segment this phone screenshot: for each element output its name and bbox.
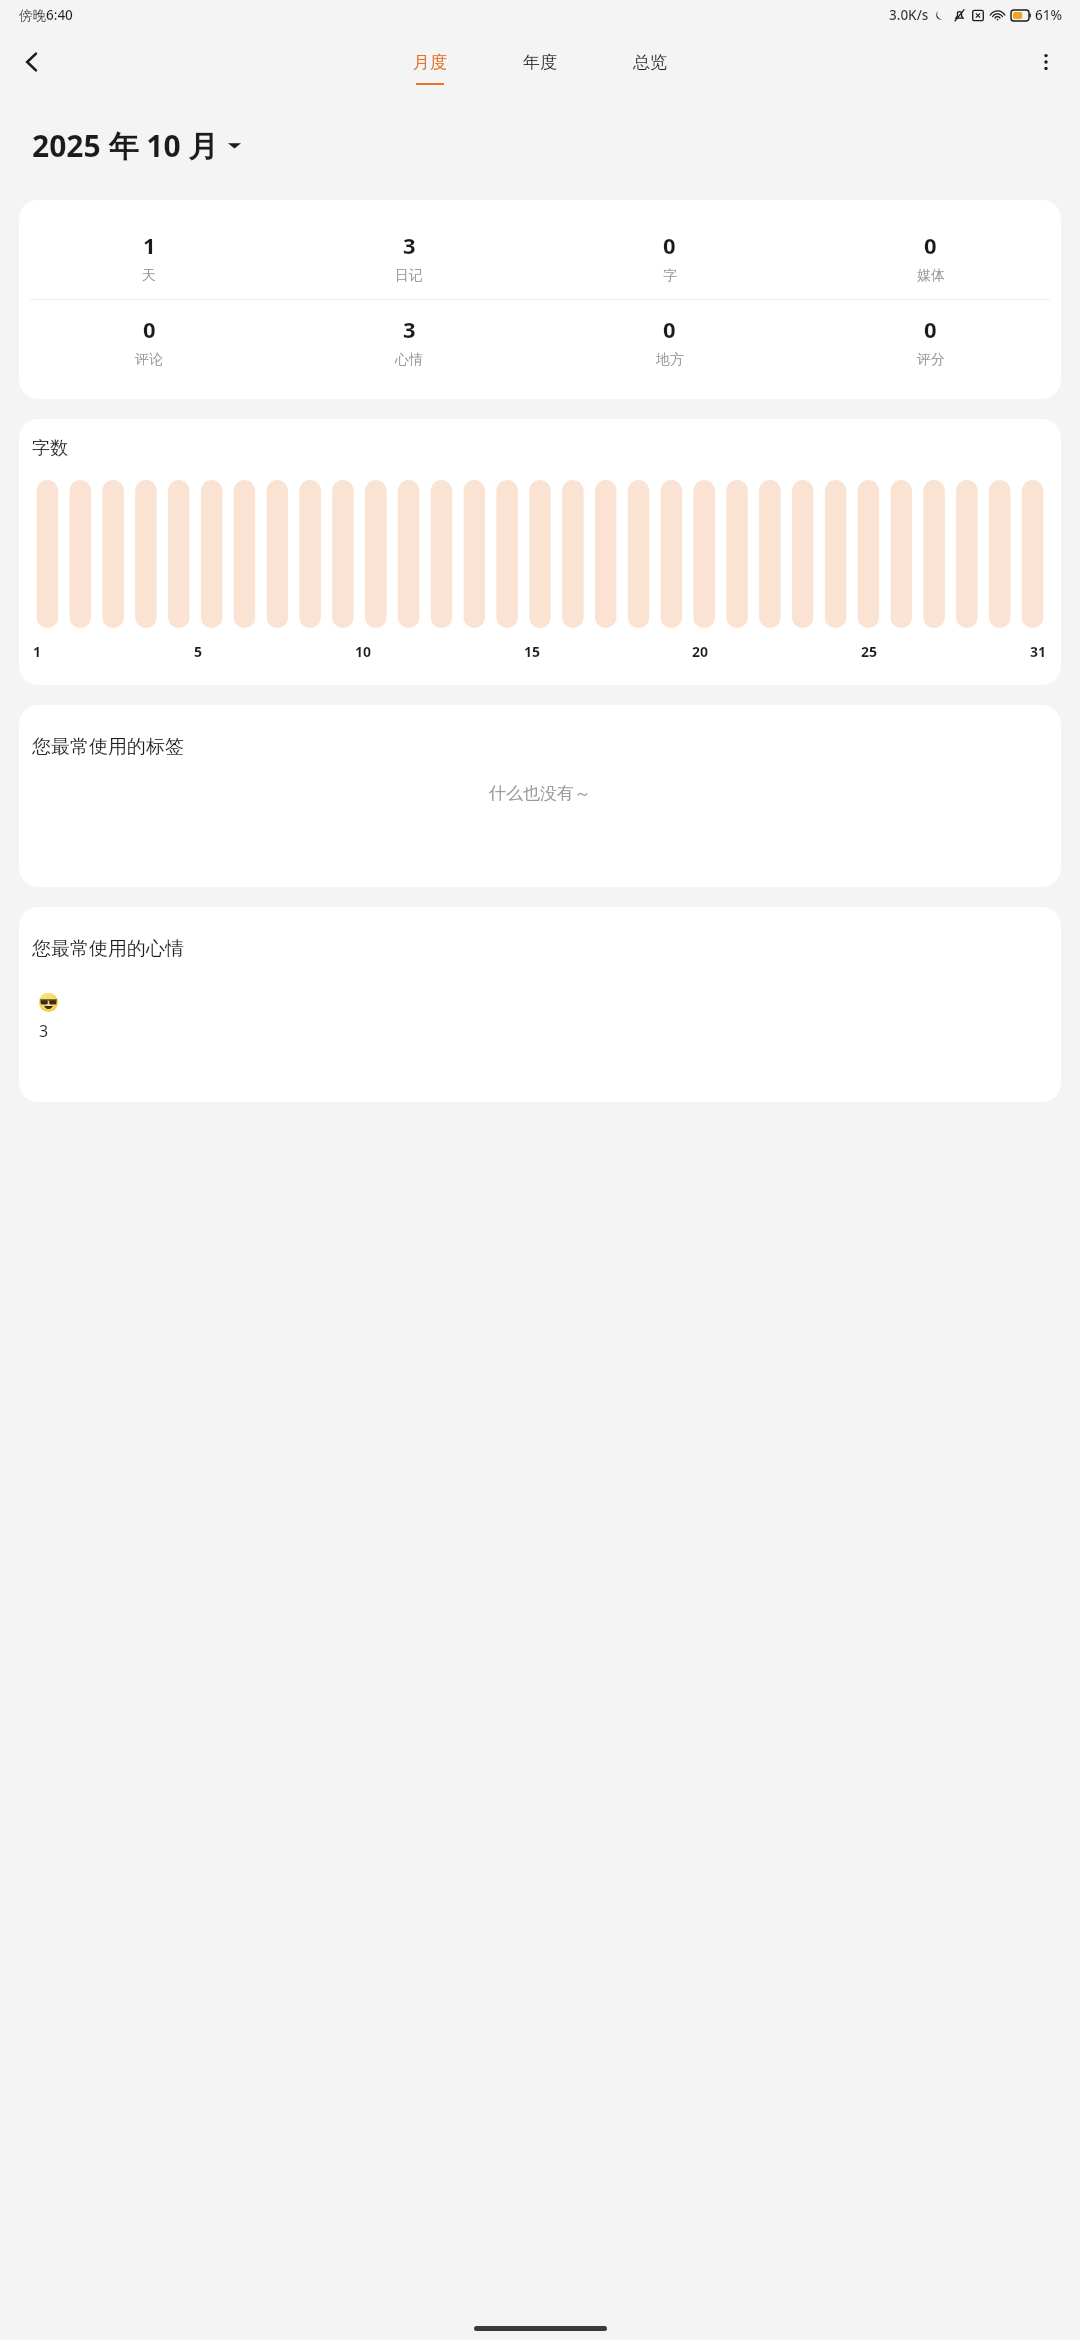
staticText: 月度 [413,52,447,73]
button[interactable]: 总览 [613,40,687,83]
staticText: 什么也没有～ [19,783,1061,804]
staticText: 3 [39,1020,49,1042]
button[interactable]: 0 [539,228,800,287]
staticText: 61% [1035,6,1062,24]
staticText: 15 [524,642,541,661]
staticText: 2025 年 10 月 [32,125,219,166]
staticText: 0 [924,230,937,260]
staticText: 3 [403,230,416,260]
staticText: 25 [861,642,878,661]
staticText: 1 [143,230,156,260]
button[interactable]: 1 [19,228,279,287]
button[interactable]: 0 [539,312,800,371]
staticText: 0 [924,314,937,344]
button[interactable]: 2025 年 10 月 [28,121,245,170]
staticText: 心情 [395,351,423,369]
staticText: 媒体 [917,267,945,285]
staticText: 傍晚6:40 [19,6,73,24]
staticText: 地方 [656,351,684,369]
button[interactable]: 0 [19,312,279,371]
staticText: 字数 [32,437,68,460]
button[interactable]: 月度 [393,40,467,85]
staticText: 3.0K/s [889,6,929,24]
staticText: 0 [663,230,676,260]
staticText: 5 [194,642,203,661]
other: Cool mood emoji [39,993,58,1012]
staticText: 0 [663,314,676,344]
button[interactable]: 3 [279,228,539,287]
staticText: 总览 [633,52,667,73]
staticText: 20 [692,642,709,661]
button[interactable]: 3 [279,312,539,371]
staticText: 您最常使用的心情 [32,937,184,961]
staticText: 您最常使用的标签 [32,735,184,759]
button[interactable]: More options [1022,38,1070,86]
button[interactable]: Cool mood emoji [39,993,58,1042]
staticText: 日记 [395,267,423,285]
button[interactable]: 年度 [503,40,577,83]
staticText: 年度 [523,52,557,73]
staticText: 31 [1030,642,1047,661]
staticText: 评分 [917,351,945,369]
staticText: 3 [403,314,416,344]
button[interactable]: 0 [800,228,1061,287]
staticText: 评论 [135,351,163,369]
button[interactable]: 0 [800,312,1061,371]
staticText: 0 [143,314,156,344]
staticText: 10 [355,642,372,661]
button[interactable]: Back [8,38,56,86]
staticText: 字 [663,267,677,285]
staticText: 1 [33,642,42,661]
staticText: 天 [142,267,156,285]
